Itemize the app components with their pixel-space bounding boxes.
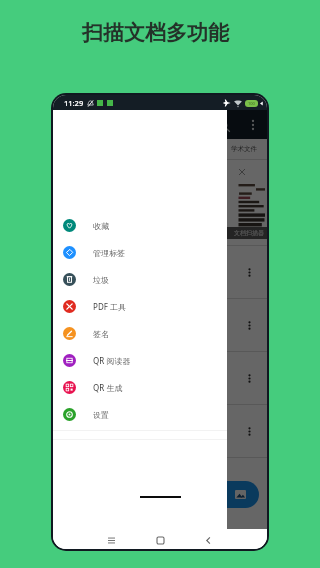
button[interactable]: Recents (102, 532, 120, 549)
staticText: 100 (248, 101, 255, 106)
staticText: 学术文件 (231, 145, 257, 153)
staticText: 文档扫描器最佳应用 (234, 229, 267, 237)
staticText: 扫描文档多功能 (82, 20, 229, 46)
button[interactable]: 管理标签 (53, 239, 227, 266)
staticText: 收藏 (93, 221, 109, 231)
button[interactable]: PDF 工具 (53, 293, 227, 320)
staticText: QR 阅读器 (93, 355, 131, 366)
button[interactable]: Item menu (53, 299, 267, 351)
button[interactable]: Item menu (242, 424, 256, 438)
button[interactable]: Scan document (193, 481, 259, 508)
staticText: 垃圾 (93, 275, 109, 285)
button[interactable]: 签名 (53, 320, 227, 347)
button[interactable]: Search (217, 119, 231, 133)
button[interactable]: QR 生成 (53, 374, 227, 401)
button[interactable]: 收藏 (53, 212, 227, 239)
button[interactable]: Item menu (53, 405, 267, 457)
staticText: 管理标签 (93, 248, 125, 258)
button[interactable]: QR 阅读器 (53, 347, 227, 374)
button[interactable]: Item menu (242, 265, 256, 279)
staticText: 11:29 (64, 98, 84, 108)
button[interactable]: Item menu (242, 371, 256, 385)
staticText: QR 生成 (93, 382, 123, 393)
button[interactable]: Item menu (53, 352, 267, 404)
button[interactable]: 垃圾 (53, 266, 227, 293)
button[interactable]: More options (246, 118, 260, 132)
button[interactable]: Home (151, 532, 169, 549)
button[interactable]: Back (199, 532, 217, 549)
staticText: PDF 工具 (93, 301, 127, 312)
button[interactable]: 设置 (53, 401, 227, 428)
button[interactable]: Item menu (53, 246, 267, 298)
staticText: 设置 (93, 410, 109, 420)
staticText: 签名 (93, 329, 109, 339)
button[interactable]: Item menu (242, 318, 256, 332)
